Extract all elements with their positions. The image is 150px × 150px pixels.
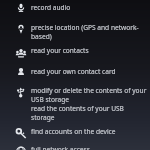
- staticText: modify or delete the contents of your US…: [31, 86, 148, 104]
- staticText: read your contacts: [31, 46, 148, 55]
- button[interactable]: [0, 123, 150, 141]
- button[interactable]: [0, 83, 150, 101]
- button[interactable]: [0, 43, 150, 61]
- staticText: precise location (GPS and network-based): [31, 23, 148, 41]
- staticText: read the contents of your USB storage: [31, 104, 148, 122]
- other: Microphone: [16, 2, 26, 12]
- staticText: full network access: [31, 145, 148, 150]
- staticText: read your own contact card: [31, 67, 148, 76]
- staticText: record audio: [31, 3, 148, 12]
- button[interactable]: [0, 0, 150, 18]
- other: Contacts: [16, 48, 26, 58]
- button[interactable]: [0, 63, 150, 81]
- button[interactable]: [0, 20, 150, 38]
- other: Network: [16, 146, 26, 150]
- other: Contact card: [16, 67, 26, 77]
- other: USB storage: [16, 87, 26, 97]
- other: Location: [16, 24, 26, 34]
- staticText: find accounts on the device: [31, 127, 148, 136]
- button[interactable]: [0, 142, 150, 150]
- other: Accounts: [16, 128, 26, 138]
